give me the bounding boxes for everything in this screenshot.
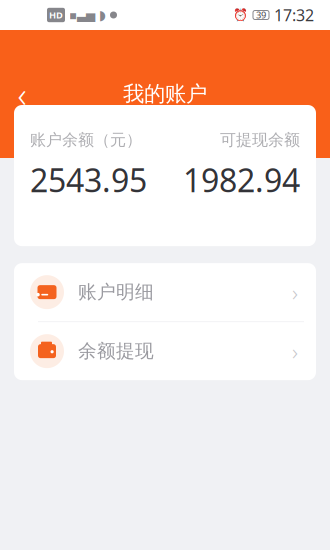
staticText: 余额提现 xyxy=(78,340,154,363)
button[interactable]: Back xyxy=(0,72,44,116)
staticText: ⏰ xyxy=(233,8,248,22)
staticText: › xyxy=(292,336,298,366)
staticText: 1982.94 xyxy=(183,159,300,201)
staticText: 我的账户 xyxy=(123,81,207,107)
button[interactable]: 账户明细 xyxy=(14,263,316,321)
staticText: ◗ xyxy=(99,7,106,22)
staticText: ‹ xyxy=(17,71,26,117)
staticText: HD xyxy=(49,9,63,21)
staticText: 17:32 xyxy=(274,4,314,26)
staticText: › xyxy=(292,277,298,307)
staticText: 可提现余额 xyxy=(220,130,300,150)
staticText: 账户余额（元） xyxy=(30,130,142,150)
staticText: 39 xyxy=(256,9,266,21)
button[interactable]: 余额提现 xyxy=(14,322,316,380)
staticText: 2543.95 xyxy=(30,159,147,201)
staticText: 账户明细 xyxy=(78,281,154,304)
staticText: ▪▃▅ xyxy=(69,8,95,22)
